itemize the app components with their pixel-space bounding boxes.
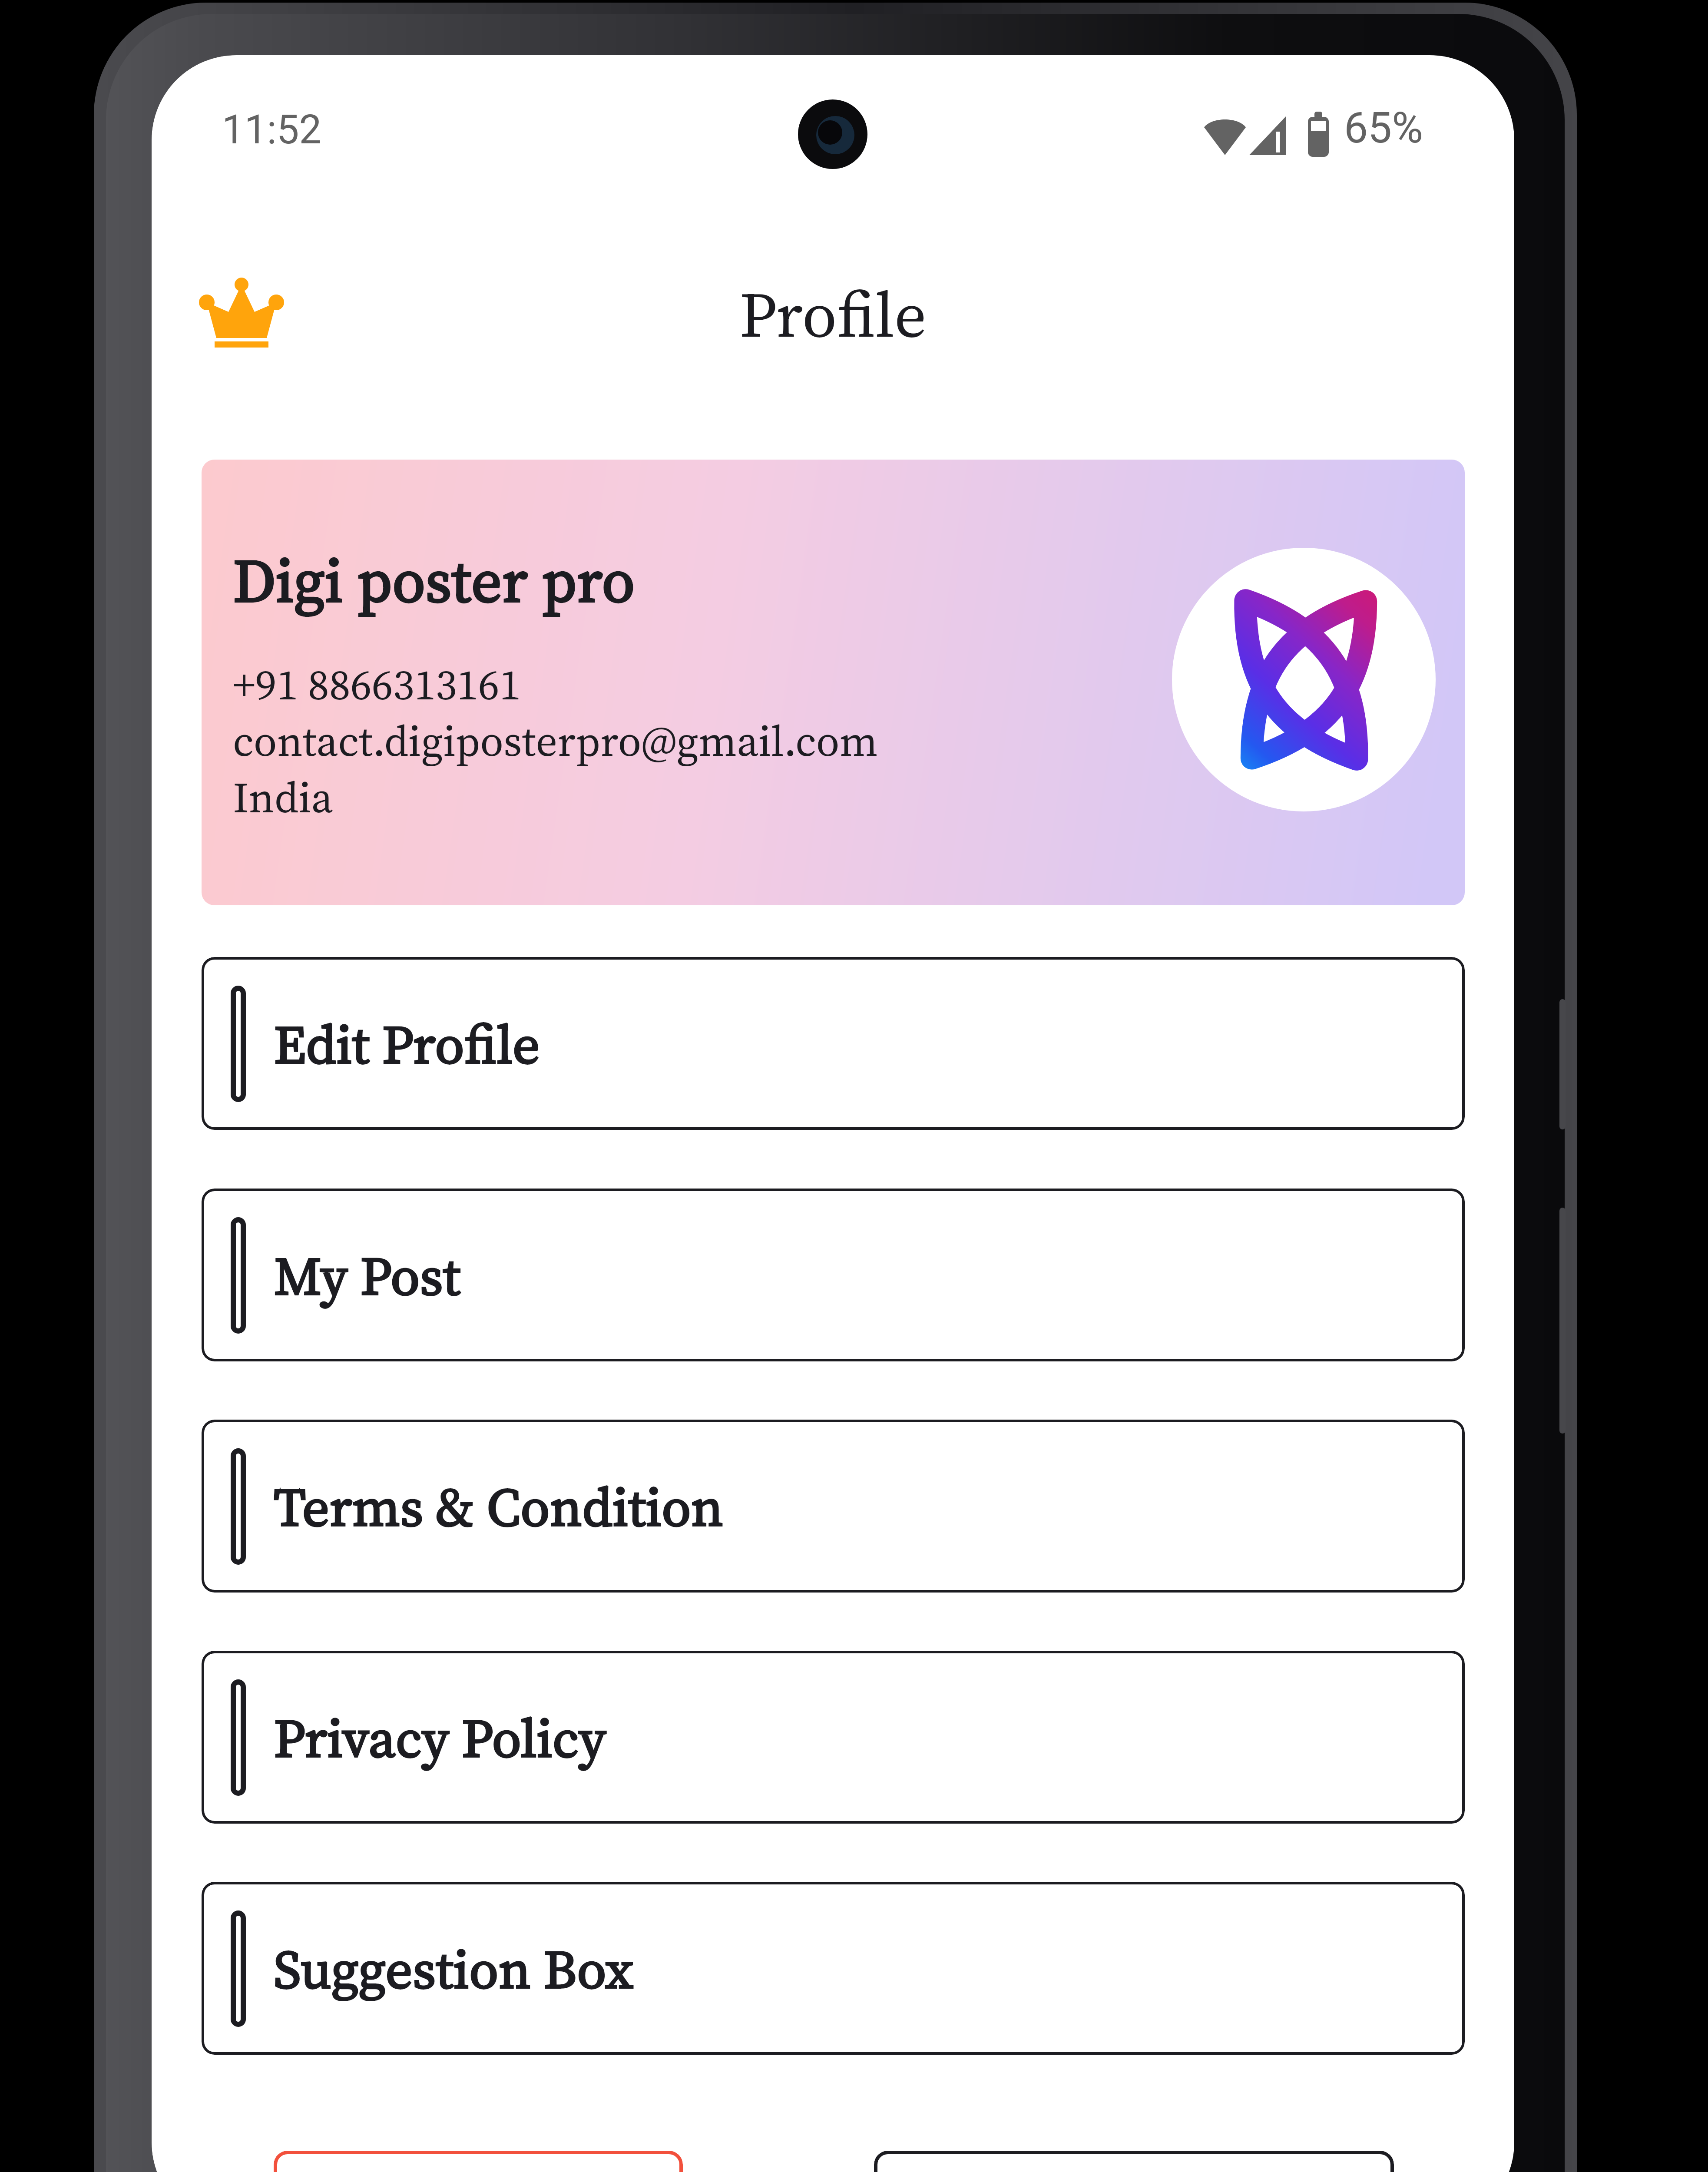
staticText: contact.digiposterpro@gmail.com [233, 712, 878, 770]
button[interactable]: Digi poster pro [202, 460, 1465, 905]
button[interactable]: Edit Profile [202, 957, 1465, 1130]
staticText: India [233, 768, 333, 826]
staticText: 65% [1344, 103, 1423, 153]
staticText: Profile [152, 271, 1514, 358]
button[interactable]: Premium [193, 270, 293, 357]
staticText: Privacy Policy [274, 1702, 606, 1775]
staticText: Edit Profile [274, 1008, 540, 1081]
staticText: Terms & Condition [274, 1470, 724, 1544]
button[interactable]: Logout [274, 2151, 683, 2172]
button[interactable]: My Post [202, 1189, 1465, 1361]
button[interactable]: Terms & Condition [202, 1420, 1465, 1593]
staticText: Digi poster pro [233, 539, 635, 622]
staticText: Suggestion Box [274, 1933, 633, 2006]
staticText: +91 8866313161 [233, 655, 521, 713]
button[interactable]: Delete Account [874, 2151, 1394, 2172]
button[interactable]: Privacy Policy [202, 1651, 1465, 1824]
staticText: 11:52 [222, 106, 322, 153]
staticText: My Post [274, 1239, 460, 1313]
button[interactable]: Suggestion Box [202, 1882, 1465, 2055]
